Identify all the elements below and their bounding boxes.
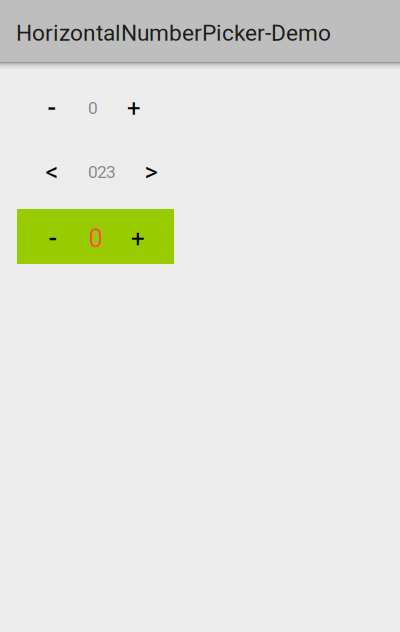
staticText: + [127,94,141,122]
button[interactable]: Decrement [33,91,71,125]
staticText: 023 [88,162,116,182]
button[interactable]: Increment [102,209,174,264]
staticText: > [144,157,157,187]
button[interactable]: Increment [115,91,153,125]
staticText: - [48,224,57,253]
staticText: - [47,93,56,123]
button[interactable]: Next [132,155,170,189]
staticText: < [45,157,58,187]
staticText: 0 [88,98,98,118]
staticText: HorizontalNumberPicker-Demo [16,20,331,46]
button[interactable]: Previous [33,155,71,189]
staticText: + [131,224,145,252]
staticText: 0 [88,224,102,253]
button[interactable]: Decrement [17,209,89,264]
